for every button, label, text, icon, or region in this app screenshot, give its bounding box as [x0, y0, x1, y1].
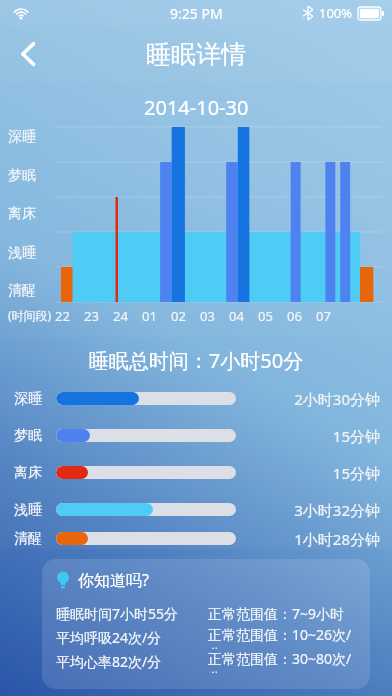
staticText: 05 — [258, 307, 273, 325]
staticText: 离床 — [8, 205, 36, 223]
staticText: 07 — [316, 307, 331, 325]
staticText: (时间段) — [8, 307, 52, 323]
staticText: 你知道吗? — [78, 569, 149, 591]
button[interactable]: 深睡 — [0, 380, 392, 417]
staticText: 深睡 — [8, 128, 36, 146]
staticText: 清醒 — [14, 530, 42, 548]
staticText: 平均心率82次/分 — [56, 652, 162, 671]
staticText: 平均呼吸24次/分 — [56, 628, 162, 647]
staticText: 睡眠详情 — [146, 39, 246, 70]
button[interactable]: 浅睡 — [0, 491, 392, 528]
staticText: 01 — [142, 307, 157, 325]
staticText: 浅睡 — [8, 244, 36, 262]
staticText: 睡眠总时间：7小时50分 — [0, 347, 392, 374]
staticText: 梦眠 — [14, 427, 42, 445]
staticText: 正常范围值：10~26次/分 — [208, 625, 360, 649]
staticText: 梦眠 — [8, 167, 36, 185]
staticText: 100% — [319, 4, 353, 22]
staticText: 正常范围值：7~9小时 — [208, 604, 345, 623]
staticText: 睡眠时间7小时55分 — [56, 604, 179, 623]
staticText: 1小时28分钟 — [236, 529, 380, 549]
staticText: 2014-10-30 — [144, 94, 249, 121]
staticText: 24 — [113, 307, 128, 325]
button[interactable]: 清醒 — [0, 528, 392, 549]
staticText: 06 — [287, 307, 302, 325]
button[interactable]: Back — [0, 26, 56, 82]
staticText: 15分钟 — [236, 426, 380, 446]
staticText: 03 — [200, 307, 215, 325]
staticText: 正常范围值：30~80次/分 — [208, 649, 360, 673]
staticText: 深睡 — [14, 390, 42, 408]
staticText: 04 — [229, 307, 244, 325]
staticText: 22 — [55, 307, 70, 325]
button[interactable]: 你知道吗? — [42, 559, 370, 689]
staticText: 清醒 — [8, 282, 36, 300]
staticText: 9:25 PM — [170, 4, 223, 23]
staticText: 23 — [84, 307, 99, 325]
staticText: 15分钟 — [236, 463, 380, 483]
staticText: 离床 — [14, 464, 42, 482]
button[interactable]: 梦眠 — [0, 417, 392, 454]
button[interactable]: 离床 — [0, 454, 392, 491]
staticText: 2小时30分钟 — [236, 389, 380, 409]
staticText: 3小时32分钟 — [236, 500, 380, 520]
staticText: 浅睡 — [14, 501, 42, 519]
staticText: 02 — [171, 307, 186, 325]
